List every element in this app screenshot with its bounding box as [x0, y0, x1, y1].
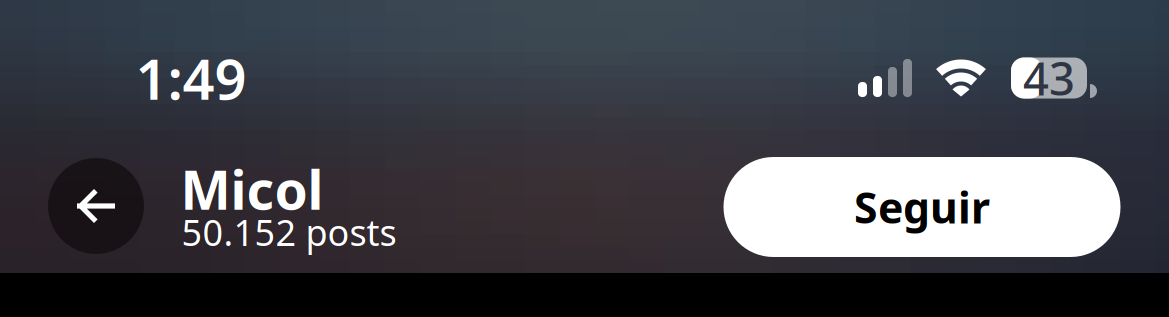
staticText: 43	[1023, 48, 1075, 108]
button[interactable]: Back	[48, 158, 144, 254]
staticText: 1:49	[135, 41, 246, 115]
staticText: Micol	[180, 154, 323, 224]
staticText: Seguir	[854, 179, 990, 235]
staticText: 50.152 posts	[181, 208, 396, 256]
button[interactable]: Seguir	[723, 157, 1120, 257]
